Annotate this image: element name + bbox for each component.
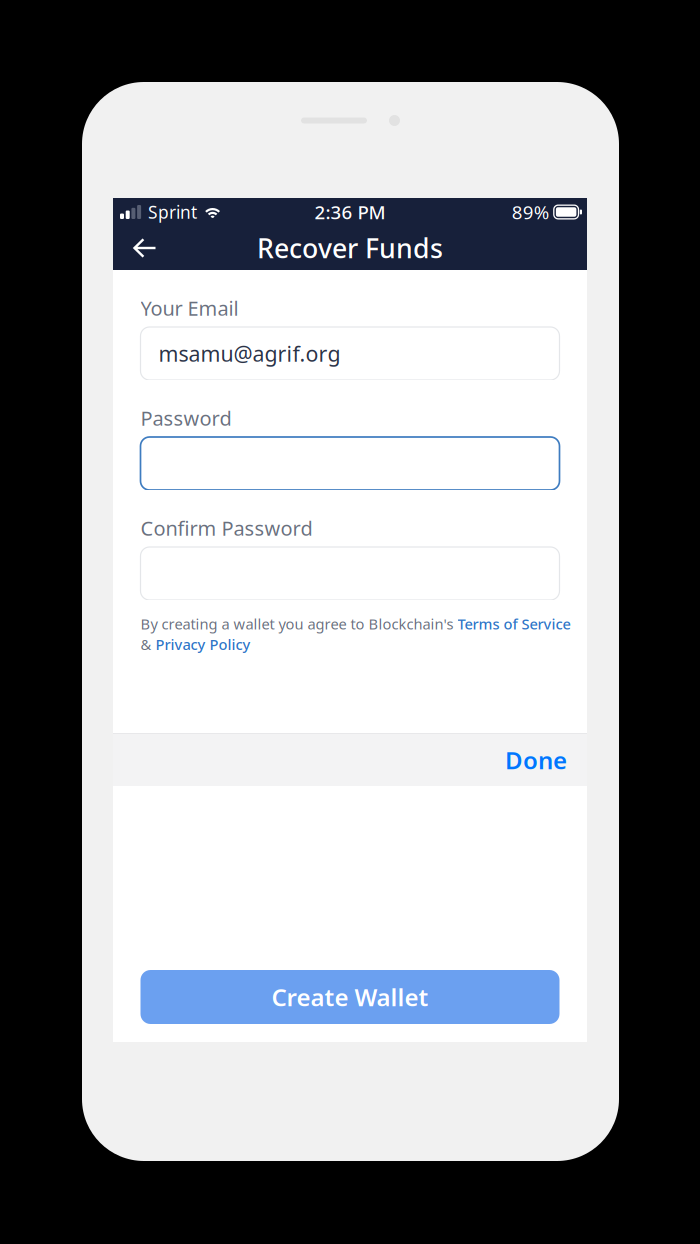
- staticText: Your Email: [140, 295, 238, 321]
- staticText: Done: [505, 744, 567, 776]
- button[interactable]: & Privacy Policy: [140, 634, 559, 654]
- button[interactable]: By creating a wallet you agree to Blockc…: [140, 614, 559, 633]
- staticText: msamu@agrif.org: [158, 339, 340, 368]
- staticText: Password: [140, 405, 231, 431]
- staticText: 2:36 PM: [314, 200, 385, 224]
- button[interactable]: Back: [113, 226, 177, 270]
- staticText: 89%: [512, 200, 550, 224]
- staticText: Create Wallet: [271, 981, 428, 1013]
- button[interactable]: Create Wallet: [140, 970, 559, 1024]
- button[interactable]: Done: [485, 730, 587, 790]
- staticText: Confirm Password: [140, 515, 312, 541]
- staticText: By creating a wallet you agree to Blockc…: [140, 614, 570, 633]
- staticText: Recover Funds: [257, 230, 443, 266]
- staticText: Sprint: [148, 200, 197, 223]
- staticText: & Privacy Policy: [140, 634, 250, 654]
